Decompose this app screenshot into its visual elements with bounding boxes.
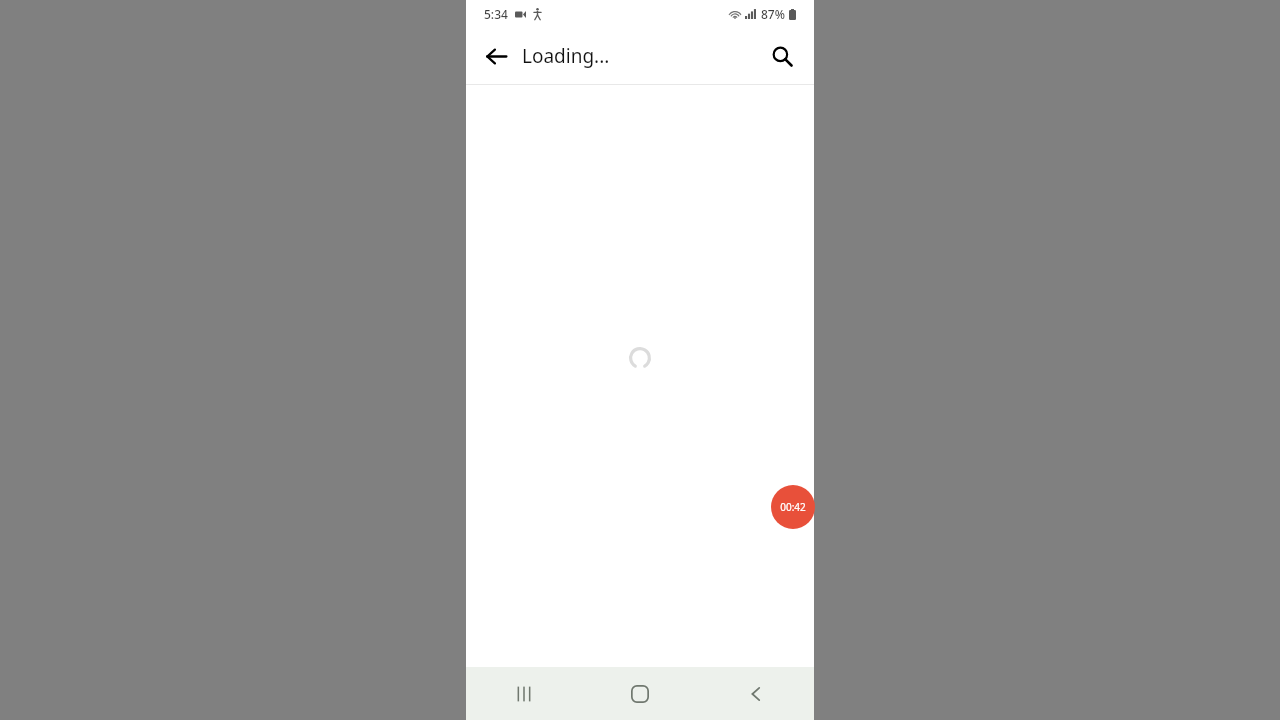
button[interactable]: 00:42 bbox=[771, 485, 815, 529]
staticText: Loading... bbox=[522, 43, 610, 69]
button[interactable]: Back bbox=[698, 667, 814, 720]
staticText: 87% bbox=[761, 6, 785, 22]
button[interactable]: Recents bbox=[466, 667, 582, 720]
staticText: 00:42 bbox=[780, 500, 806, 514]
staticText: 5:34 bbox=[484, 6, 508, 22]
button[interactable]: Back bbox=[474, 34, 518, 78]
button[interactable]: Search bbox=[760, 34, 804, 78]
button[interactable]: Home bbox=[582, 667, 698, 720]
